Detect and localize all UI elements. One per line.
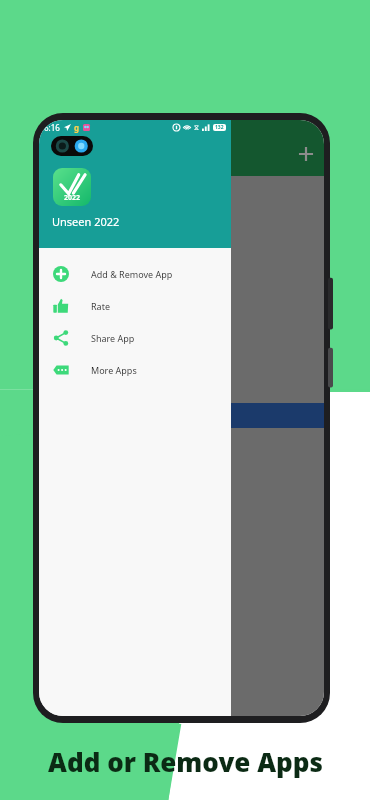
staticText: 6:16 — [44, 122, 60, 133]
staticText: Share App — [91, 332, 135, 344]
staticText: 132 — [215, 124, 224, 131]
staticText: g — [74, 122, 80, 133]
staticText: Rate — [91, 300, 110, 312]
other: Add — [298, 146, 314, 162]
staticText: Add & Remove App — [91, 268, 173, 280]
button[interactable]: Share App — [39, 322, 231, 354]
button[interactable]: Add & Remove App — [39, 258, 231, 290]
staticText: More Apps — [91, 364, 137, 376]
staticText: ⧖ — [194, 124, 199, 131]
staticText: Unseen 2022 — [52, 214, 120, 229]
button[interactable]: Rate — [39, 290, 231, 322]
staticText: 2022 — [64, 193, 81, 203]
staticText: Add or Remove Apps — [48, 744, 323, 779]
button[interactable]: More Apps — [39, 354, 231, 386]
